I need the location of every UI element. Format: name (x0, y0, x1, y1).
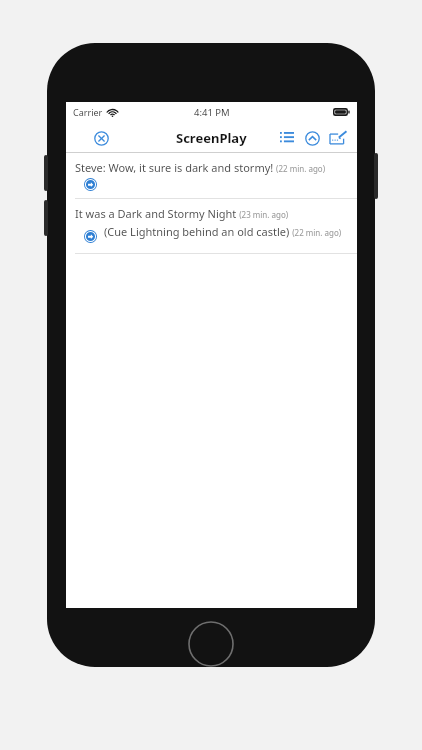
staticText: Carrier (73, 106, 103, 118)
button[interactable]: List (275, 125, 299, 151)
button[interactable]: Steve: Wow, it sure is dark and stormy! … (66, 153, 357, 198)
staticText: 4:41 PM (194, 106, 230, 119)
button[interactable]: Scroll to top (299, 125, 325, 151)
staticText: Steve: Wow, it sure is dark and stormy! … (75, 160, 326, 175)
staticText: It was a Dark and Stormy Night (23 min. … (75, 206, 289, 221)
staticText: ScreenPlay (176, 129, 247, 147)
button[interactable]: Compose (325, 125, 351, 151)
staticText: (Cue Lightning behind an old castle) (22… (104, 224, 342, 239)
button[interactable]: It was a Dark and Stormy Night (23 min. … (66, 199, 357, 253)
button[interactable]: Close (88, 125, 114, 151)
